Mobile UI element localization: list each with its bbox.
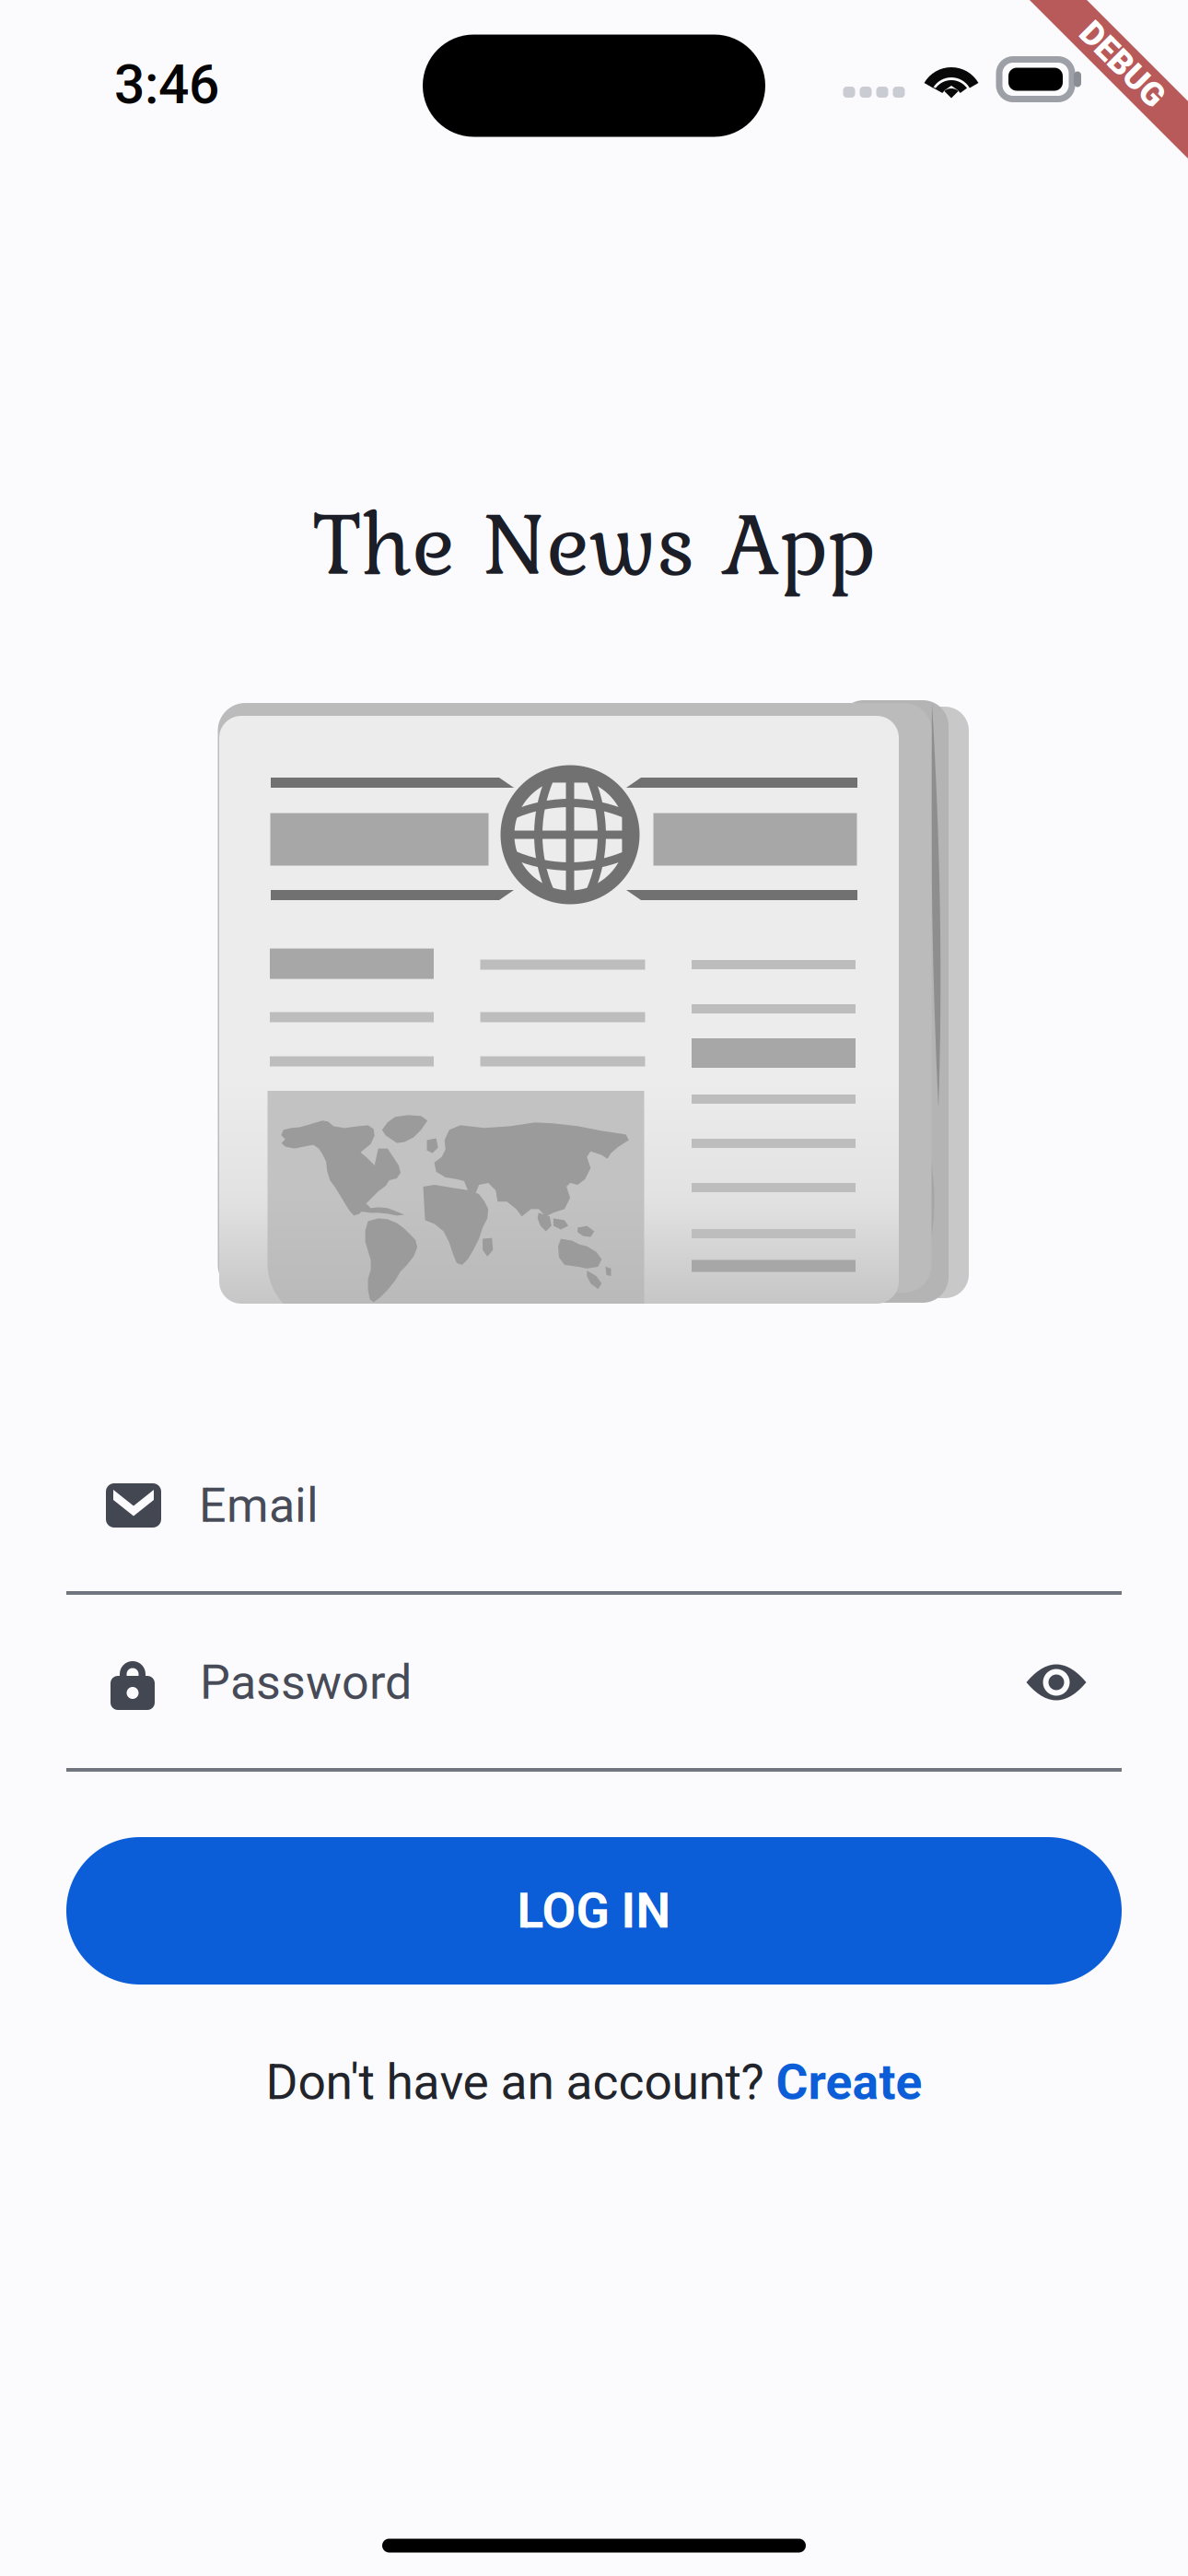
staticText: 3:46	[114, 53, 219, 116]
staticText: Create	[776, 2053, 922, 2111]
button[interactable]: Create	[776, 2053, 922, 2111]
staticText: Don't have an account?	[266, 2053, 776, 2111]
staticText: The News App	[313, 475, 875, 608]
button[interactable]: Show password	[1006, 1632, 1107, 1733]
staticText: Password	[200, 1654, 412, 1710]
button[interactable]: LOG IN	[66, 1837, 1122, 1985]
staticText: DEBUG	[1070, 45, 1176, 84]
staticText: Email	[199, 1477, 319, 1533]
staticText: LOG IN	[517, 1882, 671, 1940]
